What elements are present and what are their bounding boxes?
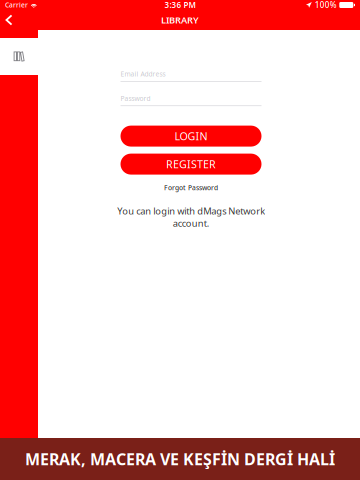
button[interactable]: REGISTER xyxy=(120,154,261,175)
button[interactable]: Back xyxy=(0,10,18,30)
staticText: You can login with dMags Network account… xyxy=(117,205,265,229)
staticText: REGISTER xyxy=(166,157,216,171)
staticText: Carrier xyxy=(5,1,28,9)
button[interactable]: Library xyxy=(0,38,38,75)
staticText: MERAK, MACERA VE KEŞFİN DERGİ HALİ xyxy=(25,448,335,470)
staticText: Email Address xyxy=(120,70,165,78)
staticText: LOGIN xyxy=(174,129,207,143)
staticText: 3:36 PM xyxy=(164,0,195,10)
staticText: LIBRARY xyxy=(161,14,199,26)
staticText: Password xyxy=(120,94,150,103)
button[interactable]: Forgot Password xyxy=(120,184,261,192)
staticText: Forgot Password xyxy=(164,183,218,192)
staticText: 100% xyxy=(315,0,337,10)
button[interactable]: LOGIN xyxy=(120,126,261,147)
